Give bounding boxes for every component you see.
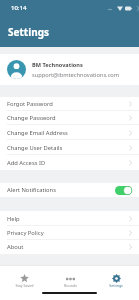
staticText: support@ibmtechnovations.com	[32, 71, 120, 79]
staticText: Settings	[8, 25, 49, 39]
button[interactable]: Change Email Address	[0, 125, 139, 140]
staticText: Alert Notifications	[7, 186, 56, 194]
button[interactable]: Privacy Policy	[0, 226, 139, 240]
staticText: Change User Details	[7, 144, 63, 152]
staticText: Privacy Policy	[7, 229, 44, 237]
button[interactable]: BM Technovations	[0, 54, 139, 85]
button[interactable]: Stay Saved	[2, 274, 47, 298]
staticText: Stay Saved	[15, 283, 34, 288]
button[interactable]: Alert Notifications	[0, 183, 139, 197]
staticText: Settings	[109, 283, 123, 288]
button[interactable]: Settings	[93, 274, 139, 298]
staticText: Add Access ID	[7, 159, 46, 167]
button[interactable]: Add Access ID	[0, 155, 139, 170]
staticText: BM Technovations	[32, 61, 83, 69]
button[interactable]: Forgot Password	[0, 97, 139, 111]
staticText: 10:14	[11, 4, 27, 12]
staticText: Change Email Address	[7, 129, 68, 137]
staticText: Help	[7, 215, 20, 223]
staticText: Forgot Password	[7, 100, 53, 108]
button[interactable]: About	[0, 240, 139, 254]
staticText: About	[7, 243, 24, 251]
staticText: Change Password	[7, 114, 56, 122]
button[interactable]: Rounds	[47, 274, 93, 298]
button[interactable]: Change User Details	[0, 140, 139, 155]
staticText: Rounds	[64, 283, 77, 288]
button[interactable]: Change Password	[0, 111, 139, 125]
button[interactable]: Help	[0, 211, 139, 226]
